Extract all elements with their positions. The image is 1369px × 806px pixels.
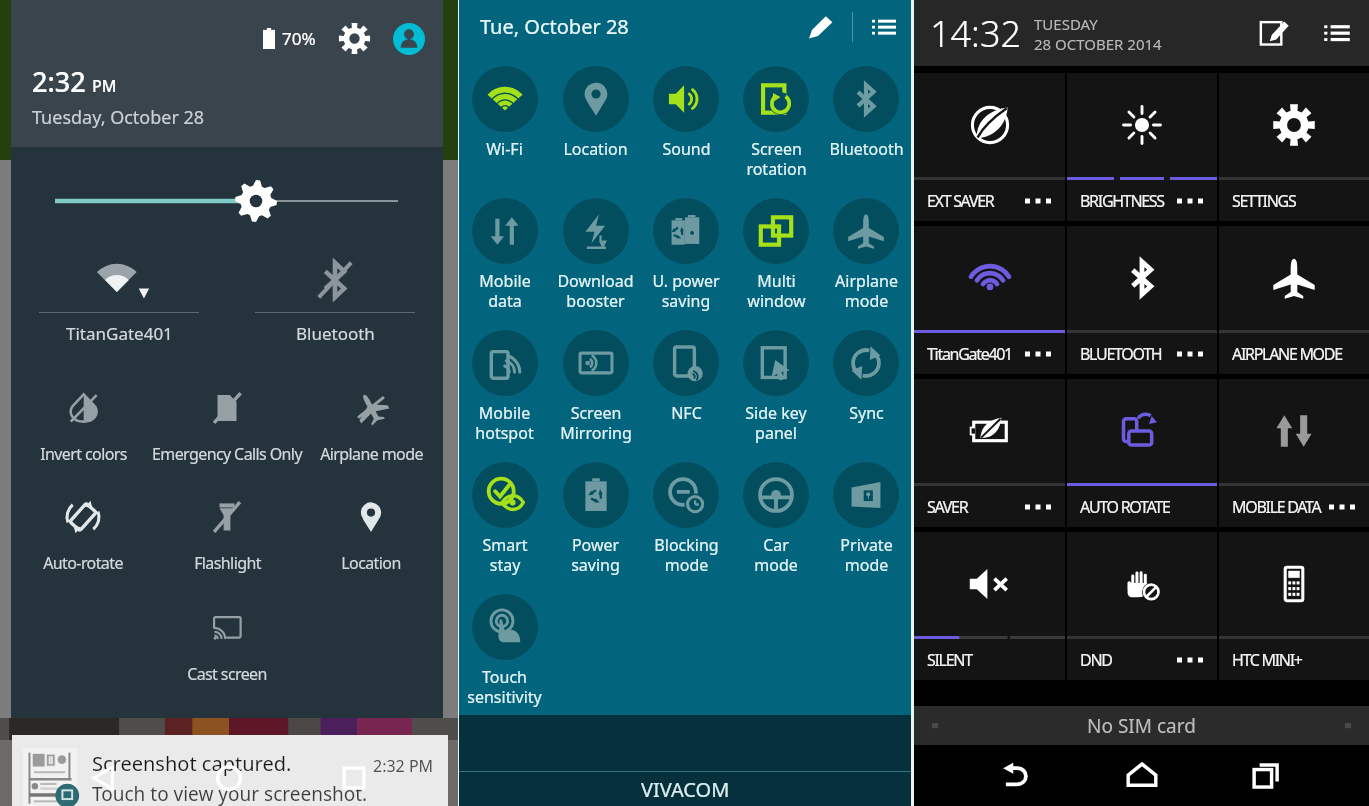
button[interactable]: Recent apps	[333, 757, 375, 799]
staticText: Wi-Fi	[486, 138, 523, 160]
button[interactable]: Home	[208, 757, 250, 799]
staticText: BRIGHTNESS	[1080, 190, 1164, 212]
staticText: Emergency Calls Only	[152, 443, 302, 465]
staticText: Flashlight	[194, 552, 261, 574]
staticText: Mobile data	[479, 270, 531, 311]
staticText: EXT SAVER	[927, 190, 994, 212]
button[interactable]: Back	[993, 753, 1039, 799]
button[interactable]: Cast screen	[155, 611, 299, 685]
staticText: Touch sensitivity	[467, 666, 542, 707]
button[interactable]: Flashlight	[155, 500, 299, 574]
button[interactable]: Back	[83, 757, 125, 799]
staticText: 28 OCTOBER 2014	[1034, 34, 1162, 54]
button[interactable]: Show list	[869, 12, 899, 42]
button[interactable]: Sound	[641, 53, 731, 160]
button[interactable]: Airplane mode	[299, 391, 443, 465]
staticText: SAVER	[927, 496, 968, 518]
staticText: Bluetooth	[296, 322, 375, 345]
button[interactable]: MOBILE DATA	[1219, 379, 1369, 527]
button[interactable]: Auto-rotate	[11, 500, 155, 574]
staticText: Blocking mode	[654, 534, 719, 575]
staticText: Tue, October 28	[480, 13, 629, 40]
staticText: TitanGate401	[927, 343, 1012, 365]
button[interactable]: Recent apps	[1244, 753, 1290, 799]
staticText: PM	[92, 75, 117, 97]
staticText: TitanGate401	[66, 322, 173, 345]
staticText: Screenshot captured.	[92, 750, 292, 777]
button[interactable]: Power saving	[550, 449, 641, 575]
button[interactable]: SILENT	[914, 532, 1065, 680]
staticText: HTC MINI+	[1232, 649, 1302, 671]
button[interactable]: Emergency Calls Only	[155, 391, 299, 465]
staticText: Airplane mode	[835, 270, 898, 311]
staticText: Bluetooth	[829, 138, 904, 160]
staticText: AUTO ROTATE	[1080, 496, 1170, 518]
staticText: Smart stay	[482, 534, 528, 575]
button[interactable]: AIRPLANE MODE	[1219, 226, 1369, 374]
button[interactable]: BLUETOOTH	[1067, 226, 1217, 374]
staticText: Side key panel	[745, 402, 807, 443]
button[interactable]: Mobile hotspot	[459, 317, 550, 443]
button[interactable]: DND	[1067, 532, 1217, 680]
staticText: 70%	[282, 27, 316, 50]
staticText: Power saving	[571, 534, 620, 575]
button[interactable]: TitanGate401	[914, 226, 1065, 374]
button[interactable]: Screenshot captured.	[12, 735, 448, 806]
button[interactable]: Wi-Fi	[459, 53, 550, 160]
button[interactable]: Screen Mirroring	[550, 317, 641, 443]
button[interactable]: Notifications list	[1321, 17, 1353, 49]
staticText: Private mode	[840, 534, 893, 575]
button[interactable]: Airplane mode	[821, 185, 911, 311]
button[interactable]: Sync	[821, 317, 911, 424]
button[interactable]: EXT SAVER	[914, 73, 1065, 221]
staticText: Cast screen	[187, 663, 267, 685]
staticText: Location	[341, 552, 401, 574]
staticText: No SIM card	[1087, 713, 1196, 739]
button[interactable]: Touch sensitivity	[459, 581, 550, 707]
button[interactable]: Private mode	[821, 449, 911, 575]
staticText: Sound	[662, 138, 711, 160]
button[interactable]: Settings	[338, 22, 371, 55]
button[interactable]: Location	[299, 500, 443, 574]
staticText: Sync	[849, 402, 884, 424]
button[interactable]: Smart stay	[459, 449, 550, 575]
button[interactable]: Location	[550, 53, 641, 160]
button[interactable]: SAVER	[914, 379, 1065, 527]
button[interactable]: NFC	[641, 317, 731, 424]
staticText: Screen Mirroring	[560, 402, 632, 443]
button[interactable]: User profile	[393, 23, 425, 55]
button[interactable]: Mobile data	[459, 185, 550, 311]
button[interactable]: Screen rotation	[731, 53, 821, 179]
button[interactable]: U. power saving	[641, 185, 731, 311]
button[interactable]: Bluetooth	[227, 253, 443, 345]
button[interactable]: BRIGHTNESS	[1067, 73, 1217, 221]
button[interactable]: AUTO ROTATE	[1067, 379, 1217, 527]
button[interactable]: Home	[1119, 753, 1165, 799]
button[interactable]: Car mode	[731, 449, 821, 575]
staticText: DND	[1080, 649, 1112, 671]
staticText: Screen rotation	[746, 138, 807, 179]
button[interactable]: Side key panel	[731, 317, 821, 443]
button[interactable]: Edit quick settings	[806, 12, 836, 42]
staticText: TUESDAY	[1034, 14, 1098, 34]
button[interactable]: HTC MINI+	[1219, 532, 1369, 680]
button[interactable]: SETTINGS	[1219, 73, 1369, 221]
staticText: 2:32 PM	[373, 755, 434, 777]
staticText: Mobile hotspot	[475, 402, 534, 443]
staticText: SETTINGS	[1232, 190, 1296, 212]
staticText: SILENT	[927, 649, 972, 671]
button[interactable]: Download booster	[550, 185, 641, 311]
button[interactable]: Multi window	[731, 185, 821, 311]
button[interactable]: Invert colors	[11, 391, 155, 465]
staticText: Download booster	[557, 270, 634, 311]
button[interactable]: TitanGate401	[11, 253, 227, 345]
button[interactable]: Edit	[1257, 17, 1289, 49]
staticText: Tuesday, October 28	[32, 105, 205, 130]
button[interactable]: Bluetooth	[821, 53, 911, 160]
button[interactable]: Blocking mode	[641, 449, 731, 575]
staticText: Auto-rotate	[43, 552, 123, 574]
staticText: Location	[563, 138, 628, 160]
staticText: Invert colors	[40, 443, 127, 465]
staticText: Touch to view your screenshot.	[92, 781, 368, 806]
staticText: BLUETOOTH	[1080, 343, 1162, 365]
